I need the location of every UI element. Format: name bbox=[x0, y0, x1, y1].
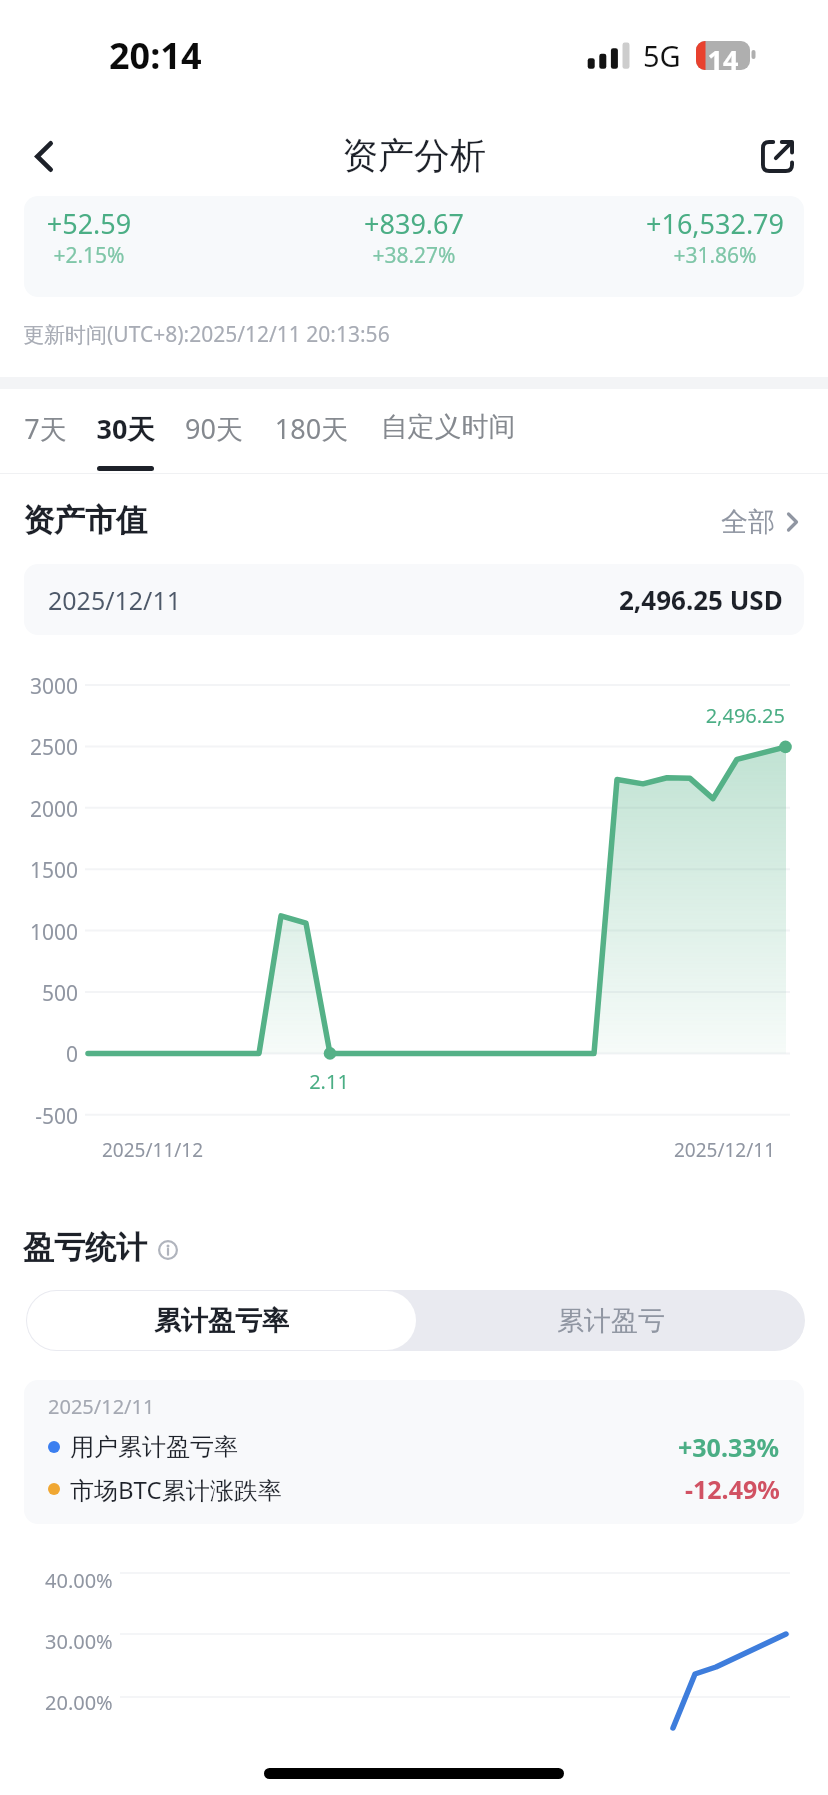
staticText: 累计盈亏 bbox=[557, 1304, 665, 1338]
staticText: +52.59 bbox=[24, 205, 239, 242]
button[interactable]: 全部 bbox=[721, 505, 799, 539]
staticText: +38.27% bbox=[264, 241, 564, 270]
button[interactable]: 2025/12/11 bbox=[24, 564, 804, 635]
staticText: +30.33% bbox=[678, 1430, 780, 1464]
staticText: 7天 bbox=[15, 410, 76, 447]
staticText: 2500 bbox=[0, 733, 78, 762]
staticText: 90天 bbox=[176, 410, 252, 447]
button[interactable]: Share bbox=[748, 127, 806, 185]
staticText: 180天 bbox=[267, 410, 356, 447]
staticText: 资产市值 bbox=[23, 501, 147, 540]
staticText: 更新时间(UTC+8):2025/12/11 20:13:56 bbox=[23, 320, 390, 349]
staticText: 1000 bbox=[0, 918, 78, 947]
staticText: 用户累计盈亏率 bbox=[70, 1432, 238, 1462]
button[interactable]: Info bbox=[158, 1240, 178, 1260]
button[interactable]: +52.59 bbox=[24, 196, 804, 297]
staticText: +839.67 bbox=[264, 205, 564, 242]
button[interactable]: Back bbox=[14, 127, 72, 185]
staticText: +2.15% bbox=[24, 241, 239, 270]
staticText: 40.00% bbox=[45, 1567, 113, 1594]
button[interactable]: 90天 bbox=[176, 396, 252, 474]
staticText: 0 bbox=[0, 1040, 78, 1069]
staticText: 2.11 bbox=[279, 1068, 379, 1095]
button[interactable]: 180天 bbox=[267, 396, 356, 474]
staticText: -500 bbox=[0, 1102, 78, 1131]
staticText: 2000 bbox=[0, 795, 78, 824]
staticText: 30天 bbox=[87, 410, 164, 447]
staticText: 14 bbox=[702, 41, 744, 78]
staticText: 2,496.25 bbox=[606, 702, 785, 729]
staticText: 2,496.25 USD bbox=[619, 582, 783, 617]
staticText: 市场BTC累计涨跌率 bbox=[70, 1473, 282, 1506]
staticText: +16,532.79 bbox=[565, 205, 804, 242]
staticText: 500 bbox=[0, 979, 78, 1008]
staticText: 1500 bbox=[0, 856, 78, 885]
staticText: 20.00% bbox=[45, 1689, 113, 1716]
staticText: 2025/12/11 bbox=[601, 1137, 775, 1163]
staticText: 全部 bbox=[721, 505, 775, 539]
staticText: -12.49% bbox=[685, 1472, 780, 1506]
staticText: 2025/12/11 bbox=[48, 583, 182, 617]
staticText: 资产分析 bbox=[0, 133, 828, 178]
staticText: 5G bbox=[643, 36, 681, 75]
staticText: 累计盈亏率 bbox=[154, 1304, 289, 1338]
staticText: +31.86% bbox=[565, 241, 804, 270]
staticText: 2025/11/12 bbox=[102, 1137, 204, 1163]
staticText: 20:14 bbox=[109, 31, 202, 80]
staticText: 自定义时间 bbox=[372, 410, 524, 444]
button[interactable]: 累计盈亏 bbox=[416, 1290, 805, 1351]
staticText: 3000 bbox=[0, 672, 78, 701]
button[interactable]: 30天 bbox=[87, 396, 164, 474]
staticText: 30.00% bbox=[45, 1628, 113, 1655]
button[interactable]: 自定义时间 bbox=[372, 396, 524, 474]
staticText: 2025/12/11 bbox=[48, 1393, 155, 1420]
button[interactable]: 7天 bbox=[15, 396, 76, 474]
staticText: 盈亏统计 bbox=[23, 1228, 147, 1267]
button[interactable]: 累计盈亏率 bbox=[27, 1291, 416, 1350]
